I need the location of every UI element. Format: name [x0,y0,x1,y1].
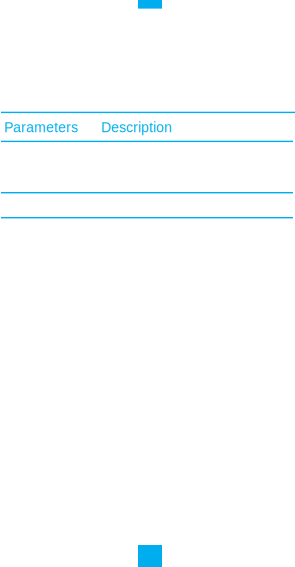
button[interactable]: Description [101,119,172,135]
staticText: Parameters [4,119,78,135]
staticText: Description [101,119,172,135]
button[interactable]: Menu [138,0,162,9]
button[interactable]: Parameters [4,119,78,135]
